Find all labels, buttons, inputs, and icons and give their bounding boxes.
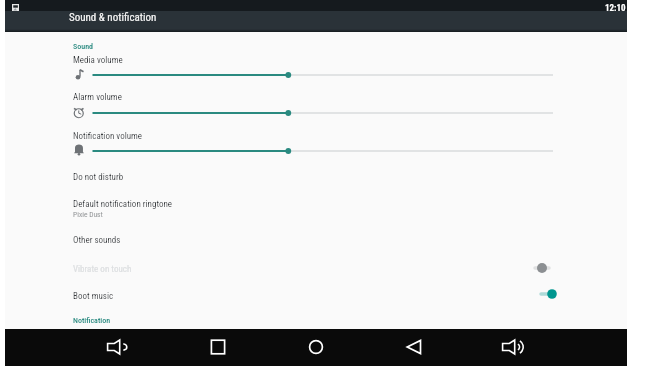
staticText: Default notification ringtone — [73, 199, 173, 210]
button[interactable]: Home — [303, 334, 329, 360]
button[interactable]: Other sounds — [5, 235, 627, 249]
staticText: Alarm volume — [73, 92, 122, 103]
staticText: 12:10 — [605, 3, 626, 14]
button[interactable]: Alarm volume — [5, 92, 627, 123]
button[interactable]: Vibrate on touch — [5, 260, 627, 276]
button[interactable]: Volume down — [104, 334, 130, 360]
staticText: Notification — [73, 316, 111, 325]
staticText: Sound & notification — [69, 11, 157, 24]
staticText: Vibrate on touch — [73, 264, 132, 275]
staticText: Notification volume — [73, 131, 143, 142]
button[interactable]: Switch on — [534, 285, 570, 301]
button[interactable]: Boot music — [5, 287, 627, 303]
staticText: Pixie Dust — [73, 210, 103, 219]
staticText: Media volume — [73, 55, 123, 66]
button[interactable]: Notification volume — [5, 131, 627, 161]
button[interactable]: Recents — [205, 334, 231, 360]
button[interactable]: Default notification ringtone — [5, 199, 627, 221]
staticText: Boot music — [73, 291, 114, 302]
staticText: Other sounds — [73, 235, 121, 246]
other: Screenshot — [12, 4, 19, 12]
staticText: Do not disturb — [73, 172, 124, 183]
button[interactable]: Do not disturb — [5, 172, 627, 186]
staticText: Sound — [73, 42, 94, 51]
button[interactable]: Media volume — [5, 55, 627, 85]
button[interactable]: Switch off — [524, 259, 560, 275]
button[interactable]: Volume up — [499, 334, 525, 360]
button[interactable]: Back — [401, 334, 427, 360]
